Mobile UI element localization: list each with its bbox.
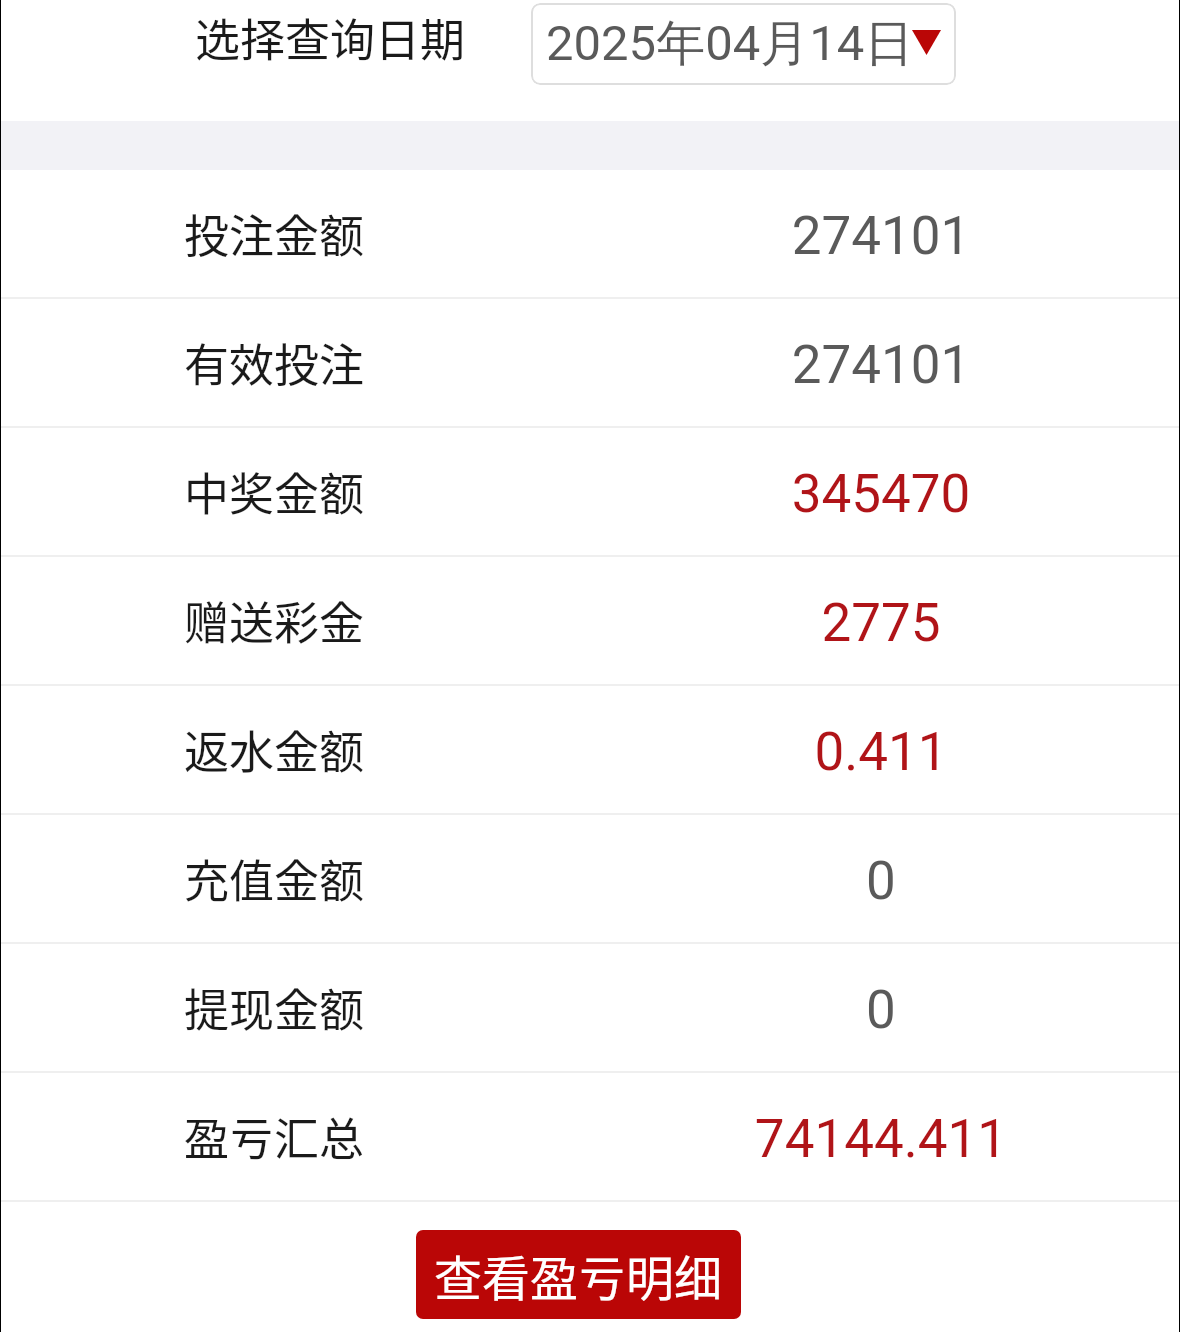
staticText: 274101	[631, 334, 1131, 396]
staticText: 345470	[631, 463, 1131, 525]
staticText: 返水金额	[184, 717, 365, 782]
button[interactable]: 盈亏汇总	[0, 1073, 1180, 1200]
staticText: 盈亏汇总	[184, 1104, 365, 1169]
staticText: 中奖金额	[184, 459, 365, 524]
button[interactable]: 2025年04月14日	[531, 3, 956, 85]
staticText: 选择查询日期	[195, 5, 466, 70]
button[interactable]: 有效投注	[0, 299, 1180, 426]
other: Expand date picker	[912, 30, 941, 55]
staticText: 0.411	[631, 721, 1131, 783]
button[interactable]: 中奖金额	[0, 428, 1180, 555]
button[interactable]: 返水金额	[0, 686, 1180, 813]
staticText: 赠送彩金	[184, 588, 365, 653]
staticText: 查看盈亏明细	[434, 1240, 723, 1310]
staticText: 有效投注	[184, 330, 365, 395]
button[interactable]: 投注金额	[0, 170, 1180, 297]
staticText: 投注金额	[184, 201, 365, 266]
staticText: 2775	[631, 592, 1131, 654]
staticText: 0	[631, 979, 1131, 1041]
button[interactable]: 查看盈亏明细	[416, 1230, 741, 1319]
staticText: 0	[631, 850, 1131, 912]
button[interactable]: 充值金额	[0, 815, 1180, 942]
staticText: 2025年04月14日	[546, 13, 914, 75]
staticText: 74144.411	[631, 1108, 1131, 1170]
button[interactable]: 赠送彩金	[0, 557, 1180, 684]
button[interactable]: 提现金额	[0, 944, 1180, 1071]
staticText: 274101	[631, 205, 1131, 267]
staticText: 提现金额	[184, 975, 365, 1040]
staticText: 充值金额	[184, 846, 365, 911]
